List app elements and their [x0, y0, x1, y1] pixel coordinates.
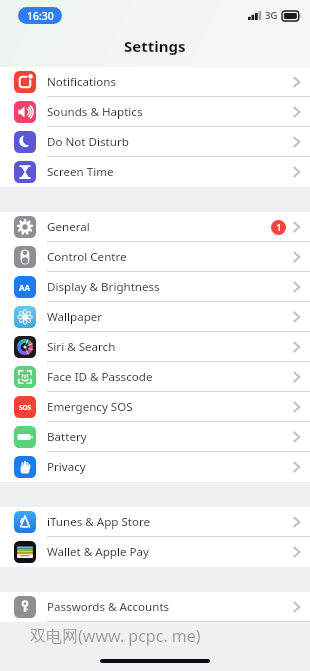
staticText: AA [19, 282, 31, 293]
staticText: Wallet & Apple Pay [47, 544, 293, 560]
staticText: Battery [47, 429, 293, 445]
staticText: Settings [124, 36, 186, 56]
button[interactable]: Do Not Disturb [0, 127, 310, 157]
button[interactable]: Wallet & Apple Pay [0, 537, 310, 567]
staticText: 16:30 [27, 9, 54, 23]
button[interactable]: Wallpaper [0, 302, 310, 332]
staticText: SOS [19, 403, 32, 412]
staticText: Emergency SOS [47, 399, 293, 415]
button[interactable]: AA [0, 272, 310, 302]
button[interactable]: Control Centre [0, 242, 310, 272]
staticText: Face ID & Passcode [47, 369, 293, 385]
staticText: Notifications [47, 74, 293, 90]
button[interactable]: Face ID & Passcode [0, 362, 310, 392]
button[interactable]: Passwords & Accounts [0, 592, 310, 622]
staticText: Wallpaper [47, 309, 293, 325]
staticText: General [47, 219, 271, 235]
button[interactable]: Screen Time [0, 157, 310, 187]
staticText: iTunes & App Store [47, 514, 293, 530]
staticText: 3G [265, 9, 278, 22]
staticText: 双电网(www. pcpc. me) [30, 625, 201, 647]
button[interactable]: iTunes & App Store [0, 507, 310, 537]
button[interactable]: Privacy [0, 452, 310, 482]
button[interactable]: Notifications [0, 67, 310, 97]
staticText: Control Centre [47, 249, 293, 265]
staticText: Siri & Search [47, 339, 293, 355]
staticText: 1 [276, 221, 282, 234]
button[interactable]: Siri & Search [0, 332, 310, 362]
button[interactable]: Battery [0, 422, 310, 452]
staticText: Display & Brightness [47, 279, 293, 295]
staticText: Do Not Disturb [47, 134, 293, 150]
staticText: Passwords & Accounts [47, 599, 293, 615]
button[interactable]: SOS [0, 392, 310, 422]
button[interactable]: General [0, 212, 310, 242]
button[interactable]: Sounds & Haptics [0, 97, 310, 127]
staticText: Privacy [47, 459, 293, 475]
staticText: Screen Time [47, 164, 293, 180]
staticText: Sounds & Haptics [47, 104, 293, 120]
